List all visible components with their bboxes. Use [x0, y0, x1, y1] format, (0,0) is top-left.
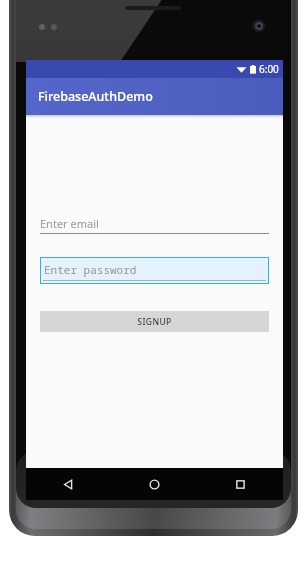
staticText: 6:00: [259, 62, 279, 76]
staticText: FirebaseAuthDemo: [38, 88, 153, 105]
staticText: SIGNUP: [137, 316, 172, 328]
button[interactable]: Enter password: [40, 257, 269, 284]
button[interactable]: Recent apps: [197, 468, 283, 500]
button[interactable]: Home: [111, 468, 197, 500]
staticText: Enter email: [40, 216, 99, 231]
staticText: Enter password: [44, 262, 137, 277]
button[interactable]: Enter email: [40, 213, 269, 234]
button[interactable]: Back: [26, 468, 111, 500]
button[interactable]: SIGNUP: [40, 311, 269, 332]
